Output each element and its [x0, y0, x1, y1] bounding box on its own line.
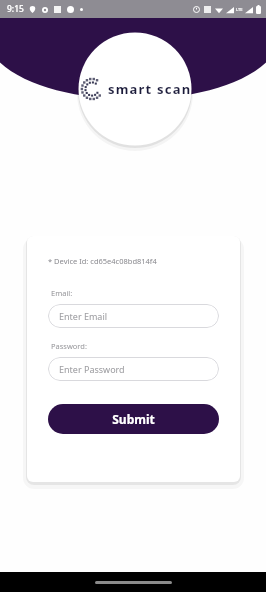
staticText: smart scan — [108, 80, 192, 98]
staticText: * Device Id: cd65e4c08bd814f4 — [48, 256, 157, 266]
staticText: 9:15 — [7, 3, 24, 15]
staticText: Enter Password — [59, 363, 125, 375]
staticText: Email: — [51, 288, 73, 298]
staticText: LTE — [236, 7, 243, 12]
button[interactable]: Enter Email — [48, 304, 219, 328]
button[interactable]: Submit — [48, 404, 219, 434]
staticText: Password: — [51, 341, 87, 351]
staticText: Enter Email — [59, 310, 108, 322]
button[interactable]: Enter Password — [48, 357, 219, 381]
staticText: Submit — [112, 411, 155, 427]
